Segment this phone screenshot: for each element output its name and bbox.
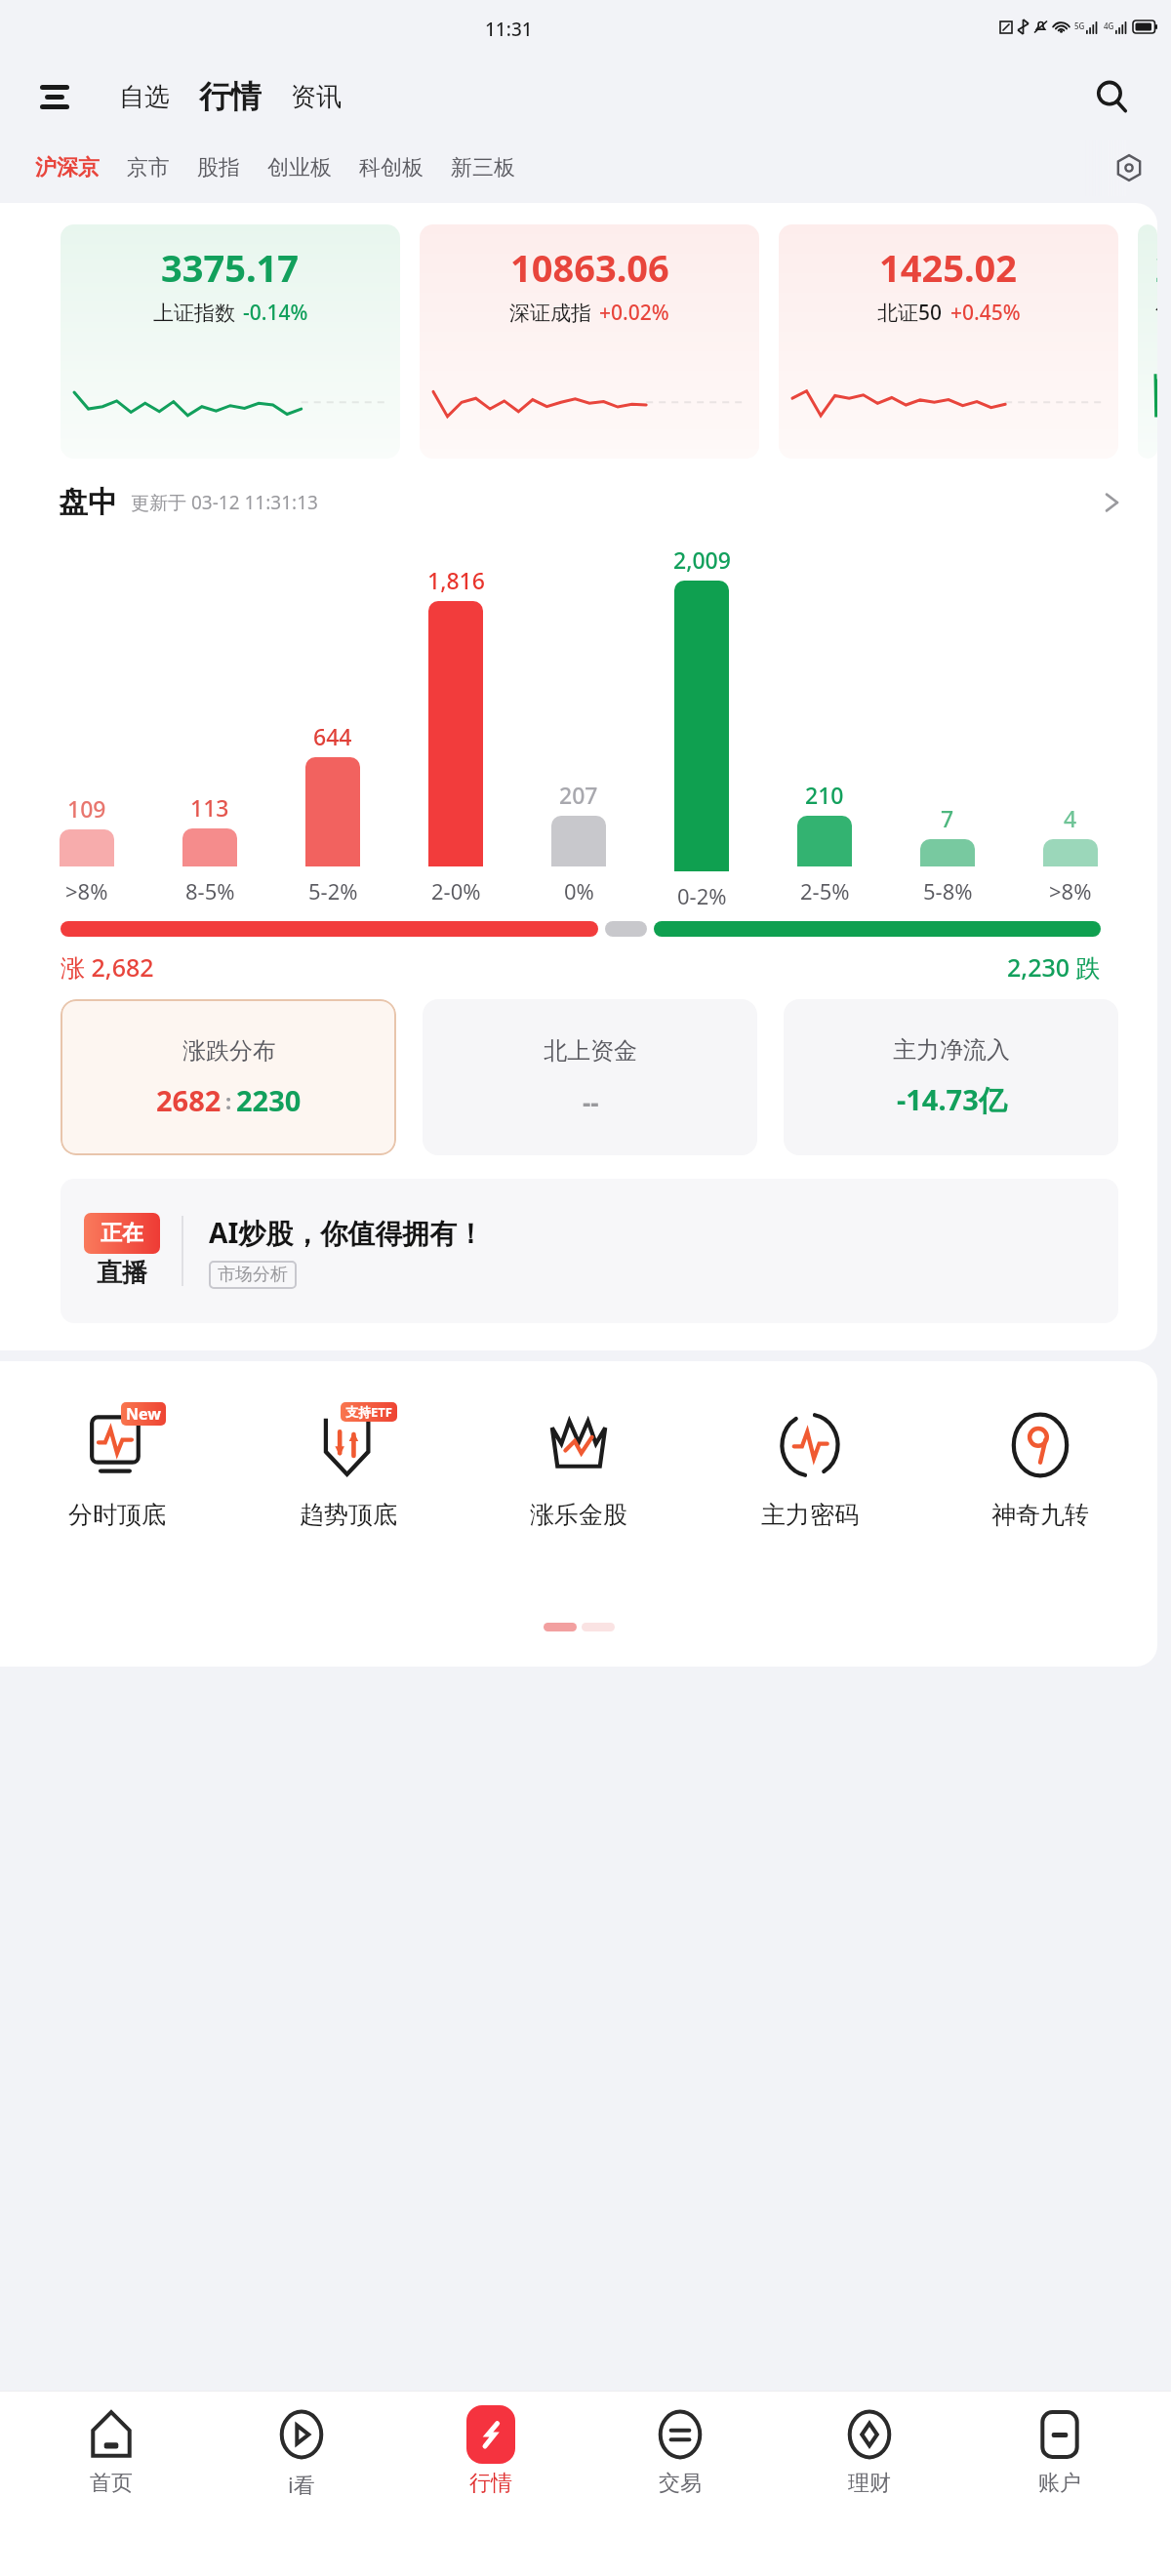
staticText: 0-2% [677, 881, 727, 906]
staticText: 644 [313, 721, 352, 751]
button[interactable]: 科创板 [349, 148, 433, 187]
staticText: 新三板 [451, 154, 515, 181]
button[interactable]: Search [1087, 72, 1136, 121]
staticText: -0.14% [243, 299, 308, 327]
button[interactable]: 新三板 [441, 148, 525, 187]
button[interactable]: 10863.06 [420, 224, 759, 459]
button[interactable]: 涨跌分布 [61, 999, 396, 1155]
button[interactable]: 盘中 [59, 480, 1122, 525]
button[interactable]: 资讯 [283, 81, 349, 113]
button[interactable]: 主力净流入 [784, 999, 1118, 1155]
staticText: 10863.06 [510, 242, 669, 293]
staticText: 正在 [101, 1220, 143, 1247]
button[interactable]: 涨乐金股 [491, 1404, 666, 1530]
button[interactable]: 1425.02 [779, 224, 1118, 459]
button[interactable]: 主力密码 [722, 1404, 898, 1530]
staticText: 自选 [119, 81, 170, 113]
button[interactable]: 北上资金 [423, 999, 757, 1155]
staticText: New [126, 1403, 161, 1425]
staticText: 210 [805, 780, 844, 810]
staticText: -- [583, 1085, 599, 1119]
staticText: 涨乐金股 [530, 1500, 627, 1530]
staticText: 趋势顶底 [300, 1500, 397, 1530]
staticText: 2-5% [800, 876, 850, 906]
button[interactable]: 交易 [602, 2405, 758, 2497]
button[interactable]: 支持ETF [261, 1404, 436, 1530]
staticText: 行情 [199, 77, 262, 116]
staticText: +0.45% [950, 299, 1021, 327]
staticText: 账户 [1038, 2470, 1081, 2497]
staticText: 113 [190, 792, 229, 823]
staticText: 涨 2,682 [61, 950, 154, 984]
staticText: 11:31 [485, 17, 533, 42]
button[interactable]: 神奇九转 [952, 1404, 1128, 1530]
staticText: 3375.17 [161, 242, 300, 293]
staticText: 8-5% [185, 876, 235, 906]
staticText: 直播 [97, 1257, 147, 1289]
staticText: 京市 [127, 154, 170, 181]
staticText: 北证50 [877, 299, 943, 327]
button[interactable]: 首页 [33, 2405, 189, 2497]
staticText: : [225, 1086, 232, 1115]
staticText: +0.02% [599, 299, 669, 327]
staticText: 理财 [848, 2470, 891, 2497]
button[interactable]: 正在 [61, 1179, 1118, 1323]
staticText: 盘中 [59, 484, 117, 521]
staticText: 7 [941, 803, 954, 833]
staticText: -14.73亿 [897, 1080, 1007, 1119]
staticText: 首页 [90, 2470, 133, 2497]
staticText: 109 [67, 793, 106, 824]
button[interactable]: 账户 [982, 2405, 1138, 2497]
staticText: 涨跌分布 [182, 1036, 276, 1066]
button[interactable]: 行情 [413, 2405, 569, 2497]
button[interactable]: Customize categories [1107, 145, 1151, 190]
staticText: >8% [65, 876, 108, 906]
button[interactable]: 理财 [791, 2405, 948, 2497]
staticText: 交易 [659, 2470, 702, 2497]
staticText: 2-0% [431, 876, 481, 906]
staticText: 2682 [156, 1081, 222, 1119]
staticText: 主力净流入 [893, 1035, 1010, 1065]
staticText: 2,230 跌 [1007, 950, 1101, 984]
staticText: AI炒股，你值得拥有！ [209, 1214, 485, 1251]
button[interactable]: 自选 [111, 81, 178, 113]
staticText: 资讯 [291, 81, 342, 113]
staticText: 深证成指 [509, 301, 591, 326]
staticText: 1425.02 [879, 242, 1018, 293]
button[interactable]: 3375.17 [61, 224, 400, 459]
button[interactable]: 行情 [191, 77, 269, 116]
staticText: 207 [559, 780, 598, 810]
staticText: 上证指数 [153, 301, 235, 326]
staticText: 神奇九转 [991, 1500, 1089, 1530]
staticText: 行情 [469, 2470, 512, 2497]
staticText: 支持ETF [345, 1403, 392, 1421]
staticText: 更新于 03-12 11:31:13 [131, 490, 318, 515]
button[interactable]: 京市 [117, 148, 180, 187]
staticText: 5-8% [923, 876, 973, 906]
staticText: 沪深京 [35, 154, 100, 181]
staticText: 科创板 [359, 154, 424, 181]
staticText: 分时顶底 [68, 1500, 166, 1530]
button[interactable]: 2 [1138, 224, 1157, 459]
button[interactable]: 股指 [187, 148, 250, 187]
staticText: 5G [1074, 20, 1085, 31]
button[interactable]: Menu [33, 75, 76, 118]
staticText: 北上资金 [544, 1036, 637, 1066]
staticText: 主力密码 [761, 1500, 859, 1530]
staticText: i看 [288, 2470, 315, 2499]
staticText: 4G [1104, 20, 1114, 31]
button[interactable]: 沪深京 [25, 148, 109, 187]
staticText: 2230 [236, 1081, 302, 1119]
staticText: 5-2% [308, 876, 358, 906]
button[interactable]: 创业板 [258, 148, 342, 187]
button[interactable]: New [29, 1404, 205, 1530]
staticText: 4 [1064, 803, 1077, 833]
staticText: 创 [1155, 297, 1157, 322]
staticText: 0% [564, 876, 594, 906]
staticText: 1,816 [427, 565, 485, 595]
staticText: 股指 [197, 154, 240, 181]
button[interactable]: i看 [223, 2405, 380, 2499]
staticText: 市场分析 [218, 1264, 288, 1286]
staticText: >8% [1049, 876, 1092, 906]
